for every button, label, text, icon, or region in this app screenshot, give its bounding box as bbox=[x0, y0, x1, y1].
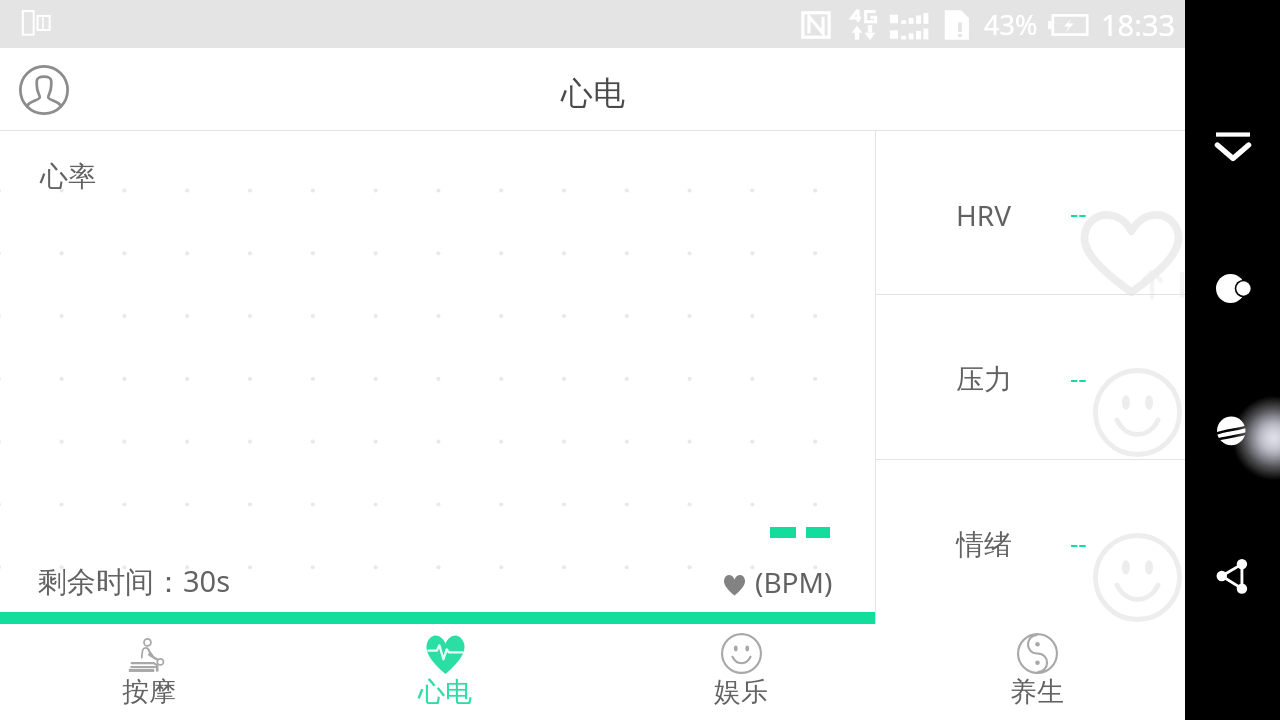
button[interactable]: 压力 bbox=[876, 295, 1185, 459]
staticText: HRV bbox=[956, 196, 1011, 234]
staticText: 心电 bbox=[561, 73, 625, 113]
button[interactable]: HRV bbox=[876, 131, 1185, 294]
staticText: 心率 bbox=[40, 159, 96, 194]
button[interactable]: Profile bbox=[19, 65, 69, 115]
staticText: (BPM) bbox=[755, 563, 833, 601]
staticText: -- bbox=[1070, 195, 1087, 230]
staticText: 按摩 bbox=[122, 675, 176, 709]
staticText: -- bbox=[1070, 525, 1087, 560]
staticText: 娱乐 bbox=[714, 675, 768, 709]
button[interactable]: 按摩 bbox=[0, 624, 297, 720]
staticText: -- bbox=[1070, 360, 1087, 395]
button[interactable]: Share bbox=[1216, 558, 1252, 594]
button[interactable]: 娱乐 bbox=[593, 624, 889, 720]
button[interactable]: Multi window bbox=[18, 10, 50, 36]
staticText: 剩余时间：30s bbox=[38, 561, 231, 601]
staticText: 养生 bbox=[1010, 675, 1064, 709]
button[interactable]: Collapse bbox=[1216, 128, 1250, 162]
button[interactable]: 养生 bbox=[889, 624, 1185, 720]
staticText: 情绪 bbox=[956, 527, 1012, 562]
button[interactable]: Screen recorder bbox=[1217, 416, 1248, 447]
staticText: 43% bbox=[984, 6, 1038, 43]
button[interactable]: 心电 bbox=[297, 624, 593, 720]
button[interactable]: Eye comfort mode bbox=[1216, 271, 1251, 306]
staticText: 18:33 bbox=[1101, 5, 1176, 44]
staticText: 压力 bbox=[956, 362, 1012, 397]
staticText: 心电 bbox=[418, 675, 472, 709]
button[interactable]: 情绪 bbox=[876, 460, 1185, 624]
